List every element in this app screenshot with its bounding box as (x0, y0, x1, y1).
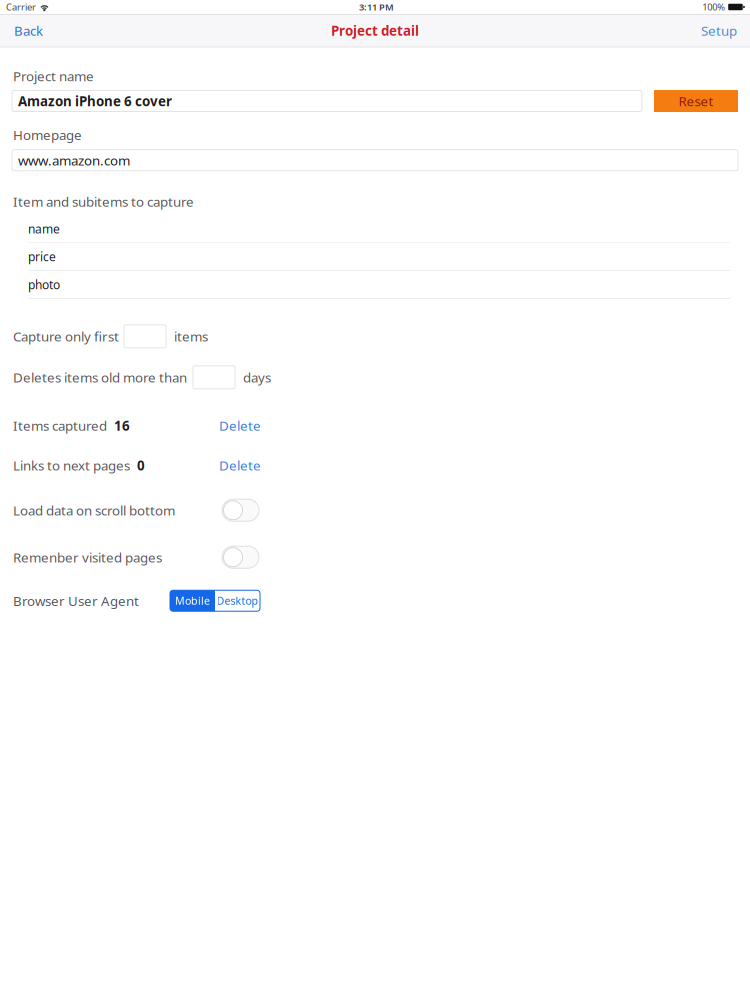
staticText: Delete (219, 456, 261, 474)
staticText: Amazon iPhone 6 cover (18, 92, 172, 110)
button[interactable]: Setup (688, 15, 750, 47)
button[interactable]: price (0, 243, 750, 271)
staticText: Back (14, 22, 43, 39)
staticText: Items captured (13, 417, 107, 434)
staticText: Item and subitems to capture (13, 193, 194, 210)
button[interactable]: Reset (654, 90, 738, 112)
staticText: Browser User Agent (13, 592, 139, 610)
staticText: items (174, 327, 208, 345)
staticText: 16 (114, 417, 130, 434)
staticText: Desktop (216, 594, 258, 608)
button[interactable]: Back (0, 15, 57, 47)
staticText: Load data on scroll bottom (13, 501, 175, 519)
staticText: days (243, 368, 271, 386)
staticText: 0 (137, 456, 145, 474)
button[interactable]: Desktop (215, 590, 260, 611)
staticText: photo (28, 277, 60, 292)
staticText: 3:11 PM (359, 1, 394, 13)
staticText: price (28, 249, 56, 265)
button[interactable]: Delete (217, 418, 263, 434)
staticText: Setup (701, 22, 737, 39)
button[interactable]: Toggle (222, 499, 259, 521)
button[interactable]: name (0, 215, 750, 243)
staticText: name (28, 221, 60, 237)
staticText: Reset (678, 92, 713, 110)
staticText: Mobile (175, 594, 210, 608)
staticText: Links to next pages (13, 456, 130, 474)
staticText: Project name (13, 67, 94, 85)
staticText: 100% (702, 1, 725, 13)
staticText: Remenber visited pages (13, 548, 162, 566)
button[interactable]: Toggle (222, 546, 259, 568)
staticText: Project detail (331, 22, 419, 39)
staticText: Homepage (13, 126, 82, 144)
button[interactable]: Mobile (170, 590, 215, 611)
staticText: Capture only first (13, 327, 119, 345)
staticText: Delete (219, 417, 261, 434)
button[interactable]: Delete (217, 457, 263, 473)
button[interactable]: photo (0, 271, 750, 299)
staticText: Carrier (6, 1, 36, 13)
staticText: www.amazon.com (18, 151, 130, 169)
staticText: Deletes items old more than (13, 368, 187, 386)
